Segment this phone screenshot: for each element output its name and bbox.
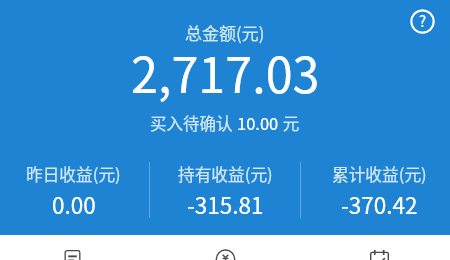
button[interactable]: 累计收益(元): [306, 162, 450, 224]
button[interactable]: Calendar: [308, 235, 450, 260]
button[interactable]: Funds: [145, 235, 306, 260]
button[interactable]: 昨日收益(元): [0, 162, 147, 224]
button[interactable]: Help: [410, 9, 435, 34]
staticText: 持有收益(元): [178, 162, 273, 186]
staticText: 0.00: [52, 188, 96, 221]
button[interactable]: 持有收益(元): [151, 162, 300, 224]
staticText: 累计收益(元): [332, 162, 427, 186]
button[interactable]: Transactions: [0, 235, 145, 260]
staticText: 2,717.03: [131, 37, 320, 107]
staticText: -315.81: [187, 188, 264, 221]
staticText: -370.42: [341, 188, 418, 221]
staticText: ?: [419, 10, 427, 32]
staticText: 10.00: [237, 111, 279, 135]
staticText: 元: [279, 111, 300, 135]
staticText: 买入待确认: [150, 111, 237, 135]
staticText: 总金额(元): [185, 20, 265, 45]
staticText: 昨日收益(元): [26, 162, 121, 186]
